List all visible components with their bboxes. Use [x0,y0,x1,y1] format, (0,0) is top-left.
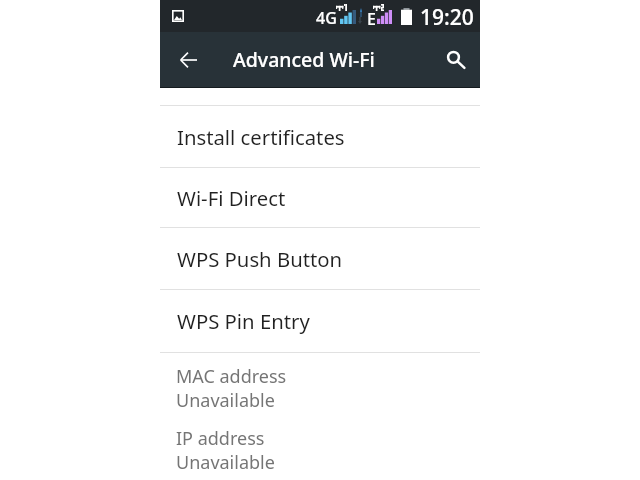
staticText: IP address [176,426,265,451]
staticText: 4G [316,7,337,29]
staticText: Wi-Fi Direct [177,184,286,212]
staticText: 19:20 [420,3,474,32]
staticText: WPS Push Button [177,245,343,273]
staticText: WPS Pin Entry [177,307,310,335]
button[interactable]: MAC address [160,353,480,415]
staticText: Install certificates [177,123,345,151]
button[interactable]: Search [424,32,480,88]
staticText: Unavailable [176,450,275,475]
button[interactable]: IP address [160,415,480,477]
staticText: Unavailable [176,388,275,413]
button[interactable]: Install certificates [160,106,480,168]
button[interactable]: Back [160,32,216,88]
staticText: Advanced Wi-Fi [233,46,375,73]
button[interactable]: WPS Push Button [160,228,480,290]
button[interactable]: WPS Pin Entry [160,290,480,353]
staticText: MAC address [176,364,287,389]
staticText: E [367,8,376,30]
button[interactable]: Wi-Fi Direct [160,168,480,228]
